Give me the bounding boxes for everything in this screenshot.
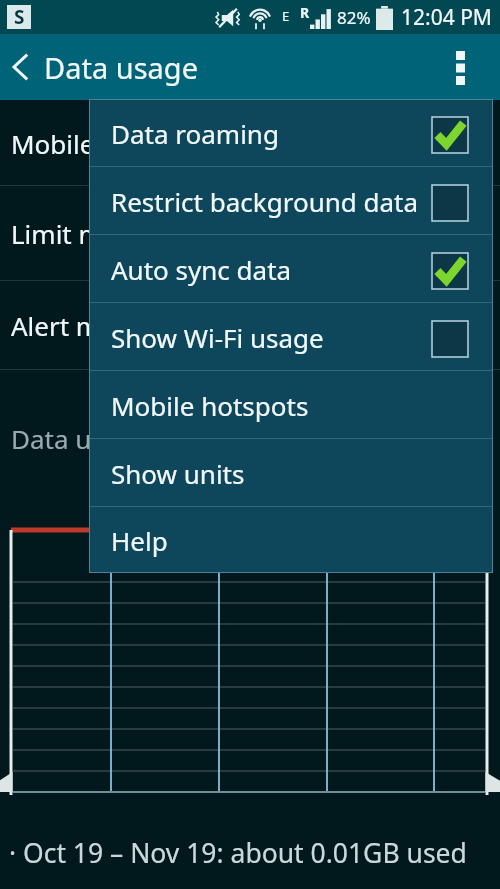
staticText: S [14, 4, 25, 28]
staticText: R [300, 3, 310, 22]
button[interactable]: Show units [89, 439, 493, 507]
staticText: 12:04 PM [401, 3, 492, 32]
staticText: · Oct 19 – Nov 19: about 0.01GB used [9, 835, 467, 871]
staticText: Alert me about data usage [11, 308, 336, 343]
button[interactable]: Navigate up [0, 34, 40, 100]
button[interactable]: Mobile hotspots [89, 371, 493, 439]
staticText: Auto sync data [111, 252, 292, 287]
button[interactable]: Data roaming [89, 99, 493, 167]
button[interactable]: Alert me about data usage [0, 281, 500, 370]
staticText: Data roaming [111, 116, 279, 151]
button[interactable]: Mobile data [0, 100, 500, 186]
staticText: Show Wi-Fi usage [111, 320, 324, 355]
staticText: 82% [337, 6, 371, 29]
button[interactable]: More options [435, 34, 485, 100]
staticText: Limit mobile data usage [11, 216, 305, 251]
staticText: Mobile data [11, 126, 156, 161]
button[interactable]: Help [89, 507, 493, 573]
button[interactable]: Show Wi-Fi usage [89, 303, 493, 371]
staticText: Restrict background data [111, 184, 419, 219]
button[interactable]: Auto sync data [89, 235, 493, 303]
staticText: Show units [111, 456, 245, 491]
staticText: E [282, 7, 290, 25]
button[interactable]: Limit mobile data usage [0, 186, 500, 281]
staticText: Data usage [44, 48, 198, 87]
staticText: Help [111, 523, 168, 558]
button[interactable]: Data usage cycle [0, 370, 500, 506]
staticText: Data usage cycle [11, 421, 216, 456]
button[interactable]: · Oct 19 – Nov 19: about 0.01GB used [0, 800, 500, 889]
staticText: Mobile hotspots [111, 388, 309, 423]
button[interactable]: Restrict background data [89, 167, 493, 235]
